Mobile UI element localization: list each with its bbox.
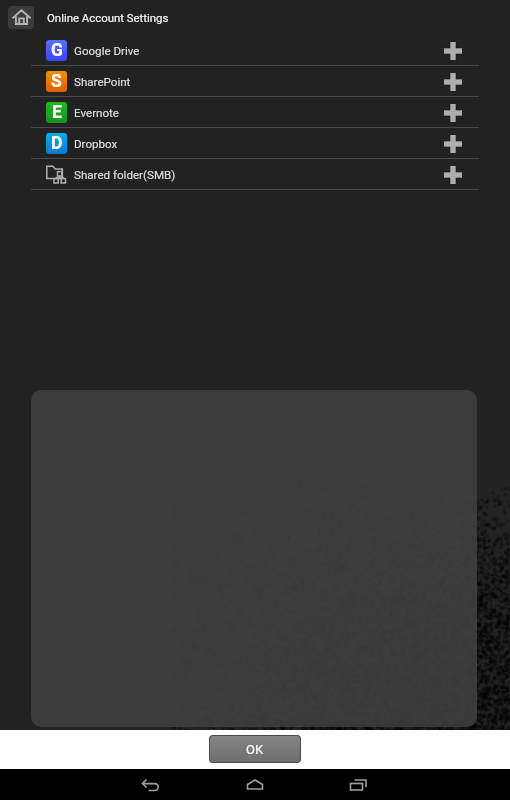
staticText: OK — [246, 742, 264, 757]
staticText: D — [51, 133, 63, 154]
button[interactable]: Home — [225, 769, 285, 800]
button[interactable]: S — [31, 66, 479, 97]
staticText: Online Account Settings — [47, 11, 169, 24]
button[interactable]: G — [31, 35, 479, 66]
button[interactable]: Home — [8, 6, 34, 29]
staticText: S — [51, 71, 62, 92]
staticText: SharePoint — [74, 75, 131, 89]
staticText: Google Drive — [74, 44, 140, 58]
button[interactable]: Shared folder(SMB) — [31, 159, 479, 190]
button[interactable]: OK — [210, 736, 300, 762]
staticText: Evernote — [74, 106, 120, 120]
staticText: E — [52, 102, 62, 123]
button[interactable]: E — [31, 97, 479, 128]
staticText: G — [51, 40, 63, 61]
button[interactable]: D — [31, 128, 479, 159]
staticText: Shared folder(SMB) — [74, 168, 176, 182]
button[interactable]: Back — [121, 769, 181, 800]
button[interactable]: Recents — [329, 769, 389, 800]
staticText: Dropbox — [74, 137, 118, 151]
